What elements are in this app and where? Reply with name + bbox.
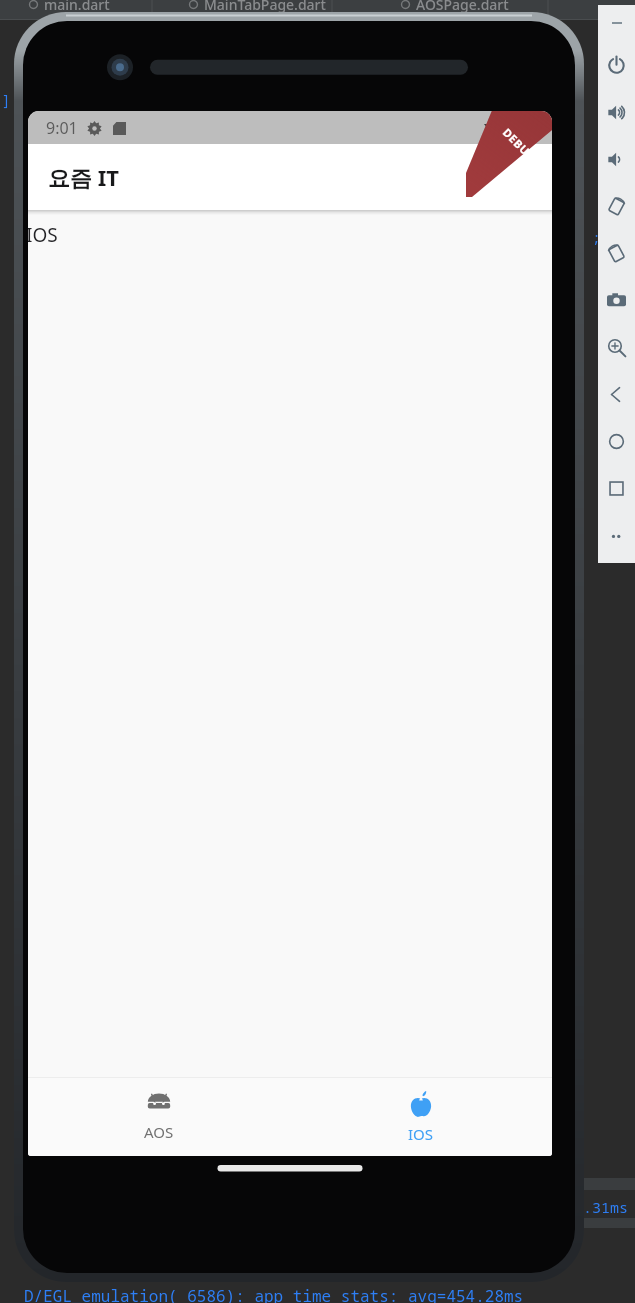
staticText: ] xyxy=(2,90,11,109)
button[interactable]: Android xyxy=(28,1078,290,1156)
button[interactable]: Rotate right xyxy=(598,230,635,277)
button[interactable]: Screenshot xyxy=(598,277,635,324)
staticText: AOSPage.dart xyxy=(416,0,509,14)
staticText: 요즘 IT xyxy=(48,162,119,192)
staticText: 9:01 xyxy=(46,117,78,139)
button[interactable]: iOS xyxy=(290,1078,552,1156)
other: iOS xyxy=(410,1091,432,1117)
staticText: ; xyxy=(592,228,601,247)
staticText: D/EGL_emulation( 6586): app time stats: … xyxy=(24,1285,524,1303)
staticText: main.dart xyxy=(44,0,110,14)
button[interactable]: main.dart xyxy=(28,0,110,14)
staticText: DEBUG xyxy=(500,125,539,164)
button[interactable]: Recents xyxy=(598,465,635,512)
button[interactable]: MainTabPage.dart xyxy=(188,0,326,14)
button[interactable]: Home xyxy=(598,418,635,465)
button[interactable]: Volume up xyxy=(598,89,635,136)
button[interactable]: Rotate left xyxy=(598,183,635,230)
staticText: AOS xyxy=(144,1122,174,1142)
staticText: IOS xyxy=(28,222,58,248)
button[interactable]: Power xyxy=(598,42,635,89)
button[interactable]: Volume down xyxy=(598,136,635,183)
staticText: .31ms xyxy=(583,1197,629,1217)
button[interactable]: Zoom xyxy=(598,324,635,371)
staticText: MainTabPage.dart xyxy=(204,0,326,14)
other: Android xyxy=(146,1093,172,1115)
staticText: IOS xyxy=(408,1124,434,1144)
button[interactable]: Back xyxy=(598,371,635,418)
button[interactable]: More xyxy=(598,512,635,559)
button[interactable]: AOSPage.dart xyxy=(400,0,509,14)
